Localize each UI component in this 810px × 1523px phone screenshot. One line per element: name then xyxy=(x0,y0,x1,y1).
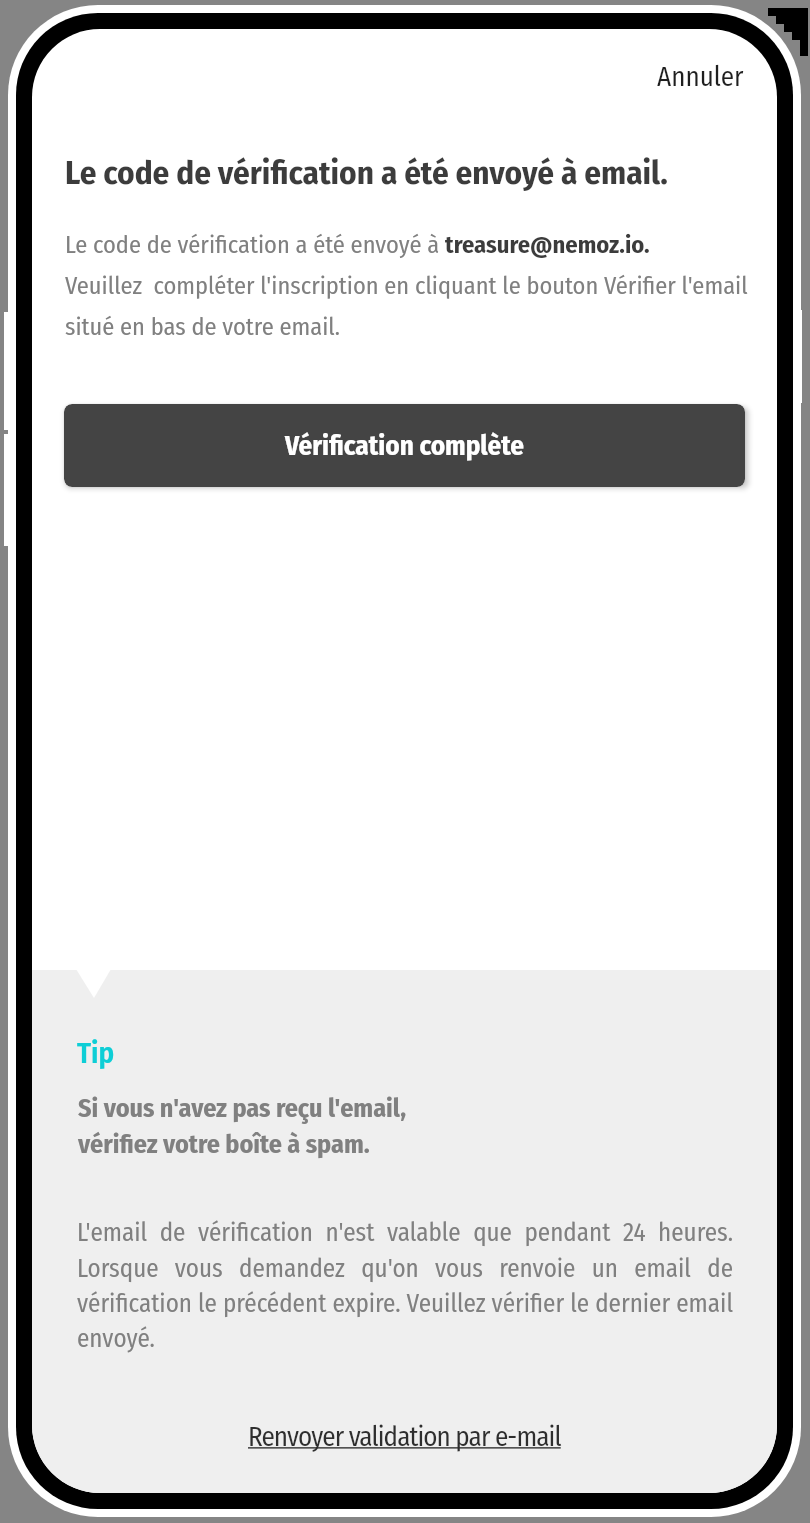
button[interactable]: Vérification complète xyxy=(64,404,745,487)
button[interactable]: Annuler xyxy=(633,29,777,107)
staticText: Renvoyer validation par e-mail xyxy=(248,1421,561,1453)
staticText: Tip xyxy=(77,1036,115,1071)
staticText: Vérification complète xyxy=(285,430,525,462)
staticText: Annuler xyxy=(657,61,744,93)
staticText: Si vous n'avez pas reçu l'email, vérifie… xyxy=(78,1093,407,1160)
staticText: L'email de vérification n'est valable qu… xyxy=(77,1218,733,1353)
staticText: Le code de vérification a été envoyé à e… xyxy=(65,153,668,193)
button[interactable]: Renvoyer validation par e-mail xyxy=(228,1416,581,1458)
staticText: Le code de vérification a été envoyé à t… xyxy=(65,230,748,341)
